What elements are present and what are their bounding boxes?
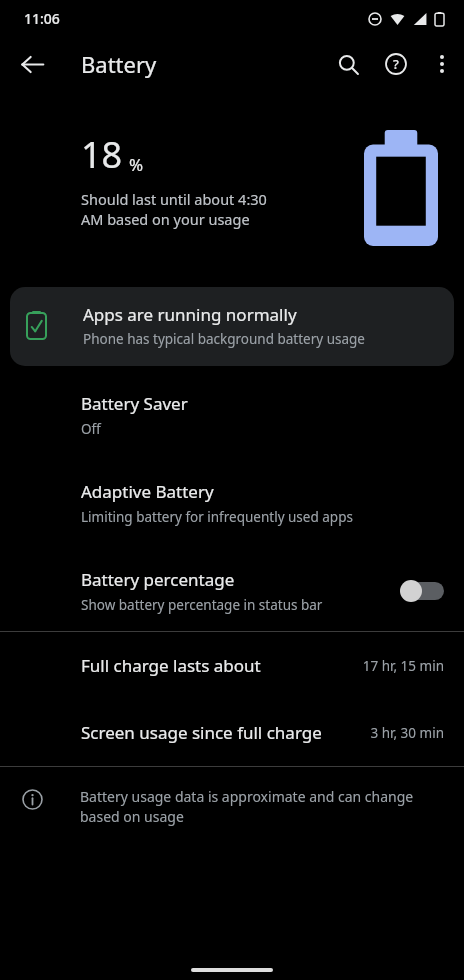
button[interactable]: Help xyxy=(372,40,420,88)
staticText: Should last until about 4:30 AM based on… xyxy=(81,189,267,230)
button[interactable]: Battery percentage xyxy=(0,560,464,618)
staticText: Phone has typical background battery usa… xyxy=(83,330,365,348)
button[interactable]: Back xyxy=(10,42,54,86)
button[interactable]: Search xyxy=(324,40,372,88)
button[interactable]: Apps are running normally xyxy=(10,287,454,366)
staticText: Limiting battery for infrequently used a… xyxy=(81,508,353,526)
staticText: Battery Saver xyxy=(81,392,188,415)
button[interactable]: Adaptive Battery xyxy=(0,472,464,530)
staticText: Show battery percentage in status bar xyxy=(81,596,323,614)
staticText: Battery percentage xyxy=(81,568,235,591)
staticText: Adaptive Battery xyxy=(81,480,214,503)
button[interactable]: Battery Saver xyxy=(0,384,464,442)
staticText: 3 hr, 30 min xyxy=(370,724,444,742)
staticText: 17 hr, 15 min xyxy=(362,657,444,675)
staticText: Battery xyxy=(81,49,157,79)
staticText: Off xyxy=(81,420,101,438)
staticText: Screen usage since full charge xyxy=(81,721,370,744)
button[interactable]: More options xyxy=(420,42,464,86)
staticText: % xyxy=(129,153,144,176)
button[interactable]: Full charge lasts about xyxy=(0,632,464,699)
staticText: 11:06 xyxy=(24,9,60,28)
staticText: Battery usage data is approximate and ca… xyxy=(80,787,414,826)
button[interactable]: Screen usage since full charge xyxy=(0,699,464,766)
staticText: ? xyxy=(393,55,399,73)
staticText: 18 xyxy=(81,130,123,179)
staticText: Apps are running normally xyxy=(83,303,297,326)
staticText: Full charge lasts about xyxy=(81,654,362,677)
